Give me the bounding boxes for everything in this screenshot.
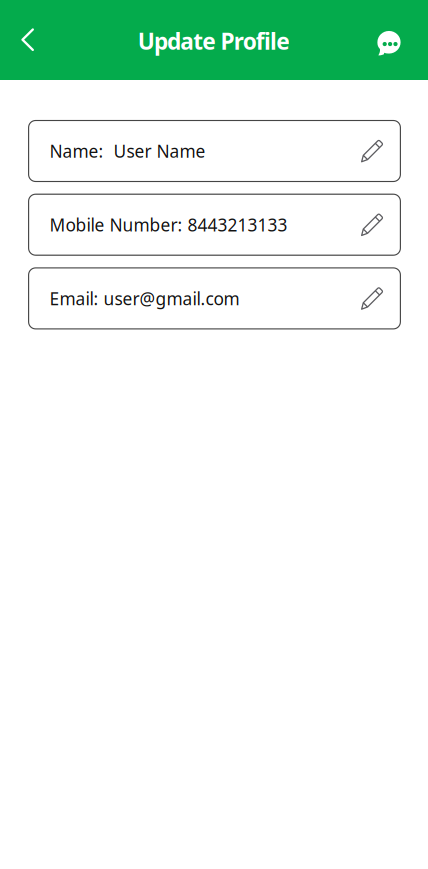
staticText: Mobile Number: 8443213133 [50,213,288,236]
button[interactable]: Email: user@gmail.com [29,268,400,329]
button[interactable]: Mobile Number: 8443213133 [29,194,400,255]
button[interactable]: Name: User Name [29,120,400,181]
button[interactable]: Messages [367,18,411,62]
button[interactable]: Back [6,18,50,62]
staticText: Update Profile [138,26,290,56]
staticText: Email: user@gmail.com [50,287,240,310]
staticText: Name: User Name [50,139,206,162]
